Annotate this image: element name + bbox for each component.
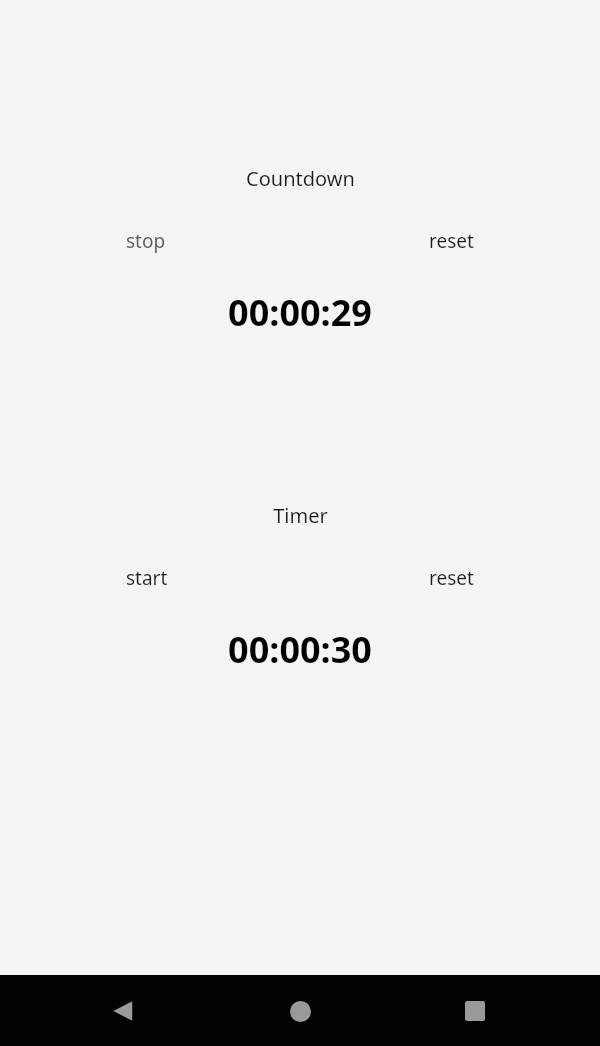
staticText: Timer: [273, 502, 328, 529]
button[interactable]: stop: [126, 228, 166, 254]
staticText: reset: [429, 228, 474, 254]
staticText: reset: [429, 565, 474, 591]
staticText: 00:00:30: [228, 625, 372, 674]
staticText: 00:00:29: [228, 288, 372, 337]
button[interactable]: start: [126, 565, 168, 591]
staticText: start: [126, 565, 168, 591]
button[interactable]: reset: [429, 565, 474, 591]
staticText: Countdown: [246, 165, 355, 192]
button[interactable]: Home: [270, 981, 330, 1041]
button[interactable]: reset: [429, 228, 474, 254]
button[interactable]: Recent apps: [445, 981, 505, 1041]
button[interactable]: Back: [93, 981, 153, 1041]
staticText: stop: [126, 228, 166, 254]
